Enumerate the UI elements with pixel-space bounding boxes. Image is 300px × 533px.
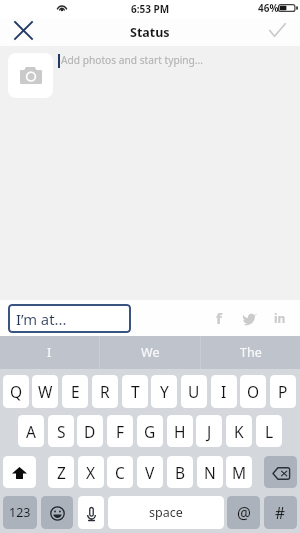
button[interactable]: Q (3, 375, 29, 408)
button[interactable]: B (167, 456, 193, 488)
button[interactable]: J (196, 415, 222, 447)
button[interactable]: A (18, 415, 44, 447)
button[interactable]: Post (254, 18, 300, 46)
staticText: B (175, 462, 186, 483)
button[interactable]: I (211, 375, 237, 408)
staticText: Status (130, 24, 170, 41)
staticText: 123 (9, 504, 31, 521)
button[interactable]: space (108, 496, 224, 529)
staticText: 6:53 PM (131, 2, 170, 16)
button[interactable]: Twitter (241, 307, 258, 329)
staticText: W (38, 381, 53, 402)
button[interactable]: F (107, 415, 133, 447)
button[interactable]: U (181, 375, 207, 408)
button[interactable]: # (264, 496, 297, 529)
button[interactable]: T (122, 375, 148, 408)
staticText: Q (10, 381, 23, 402)
button[interactable]: Backspace (264, 456, 297, 488)
button[interactable]: The (201, 336, 300, 369)
staticText: 46% (258, 1, 279, 15)
button[interactable]: 123 (3, 496, 37, 529)
staticText: F (116, 421, 125, 442)
staticText: Z (57, 462, 66, 483)
button[interactable]: G (137, 415, 163, 447)
button[interactable]: E (62, 375, 88, 408)
staticText: C (115, 462, 125, 483)
staticText: V (145, 462, 155, 483)
button[interactable]: LinkedIn (271, 307, 289, 329)
button[interactable]: @ (227, 496, 260, 529)
button[interactable]: Facebook (211, 307, 226, 329)
staticText: I (221, 381, 227, 402)
staticText: The (240, 344, 262, 361)
staticText: P (278, 381, 288, 402)
staticText: T (131, 381, 140, 402)
button[interactable]: D (77, 415, 103, 447)
button[interactable]: Z (48, 456, 74, 488)
button[interactable]: K (226, 415, 252, 447)
button[interactable]: I’m at... (8, 304, 131, 333)
button[interactable]: C (107, 456, 133, 488)
staticText: X (86, 462, 96, 483)
button[interactable]: Dictate (78, 496, 104, 529)
staticText: G (144, 421, 156, 442)
staticText: K (234, 421, 244, 442)
staticText: J (207, 421, 212, 442)
button[interactable]: Close (0, 18, 46, 46)
staticText: f (216, 308, 222, 328)
button[interactable]: Shift (3, 456, 36, 488)
button[interactable]: X (78, 456, 104, 488)
button[interactable]: I (0, 336, 99, 369)
staticText: space (149, 504, 183, 521)
staticText: O (247, 381, 260, 402)
button[interactable]: Emoji (41, 496, 73, 529)
button[interactable]: O (240, 375, 266, 408)
staticText: H (174, 421, 186, 442)
staticText: U (188, 381, 200, 402)
staticText: # (275, 502, 286, 523)
staticText: N (204, 462, 216, 483)
button[interactable]: N (197, 456, 223, 488)
staticText: I (47, 344, 52, 361)
staticText: @ (237, 502, 251, 523)
button[interactable]: W (32, 375, 58, 408)
staticText: Add photos and start typing... (61, 53, 204, 67)
staticText: Y (160, 381, 169, 402)
button[interactable]: Add photos (8, 53, 53, 98)
button[interactable]: M (226, 456, 252, 488)
staticText: S (57, 421, 66, 442)
button[interactable]: V (137, 456, 163, 488)
button[interactable]: R (92, 375, 118, 408)
staticText: M (232, 462, 247, 483)
staticText: L (265, 421, 274, 442)
button[interactable]: H (167, 415, 193, 447)
staticText: I’m at... (16, 309, 67, 329)
button[interactable]: Y (151, 375, 177, 408)
staticText: in (274, 310, 286, 326)
button[interactable]: We (100, 336, 200, 369)
staticText: D (84, 421, 96, 442)
button[interactable]: L (256, 415, 282, 447)
button[interactable]: P (270, 375, 296, 408)
staticText: R (100, 381, 110, 402)
staticText: A (26, 421, 36, 442)
staticText: E (71, 381, 80, 402)
staticText: We (141, 344, 160, 361)
button[interactable]: S (48, 415, 74, 447)
